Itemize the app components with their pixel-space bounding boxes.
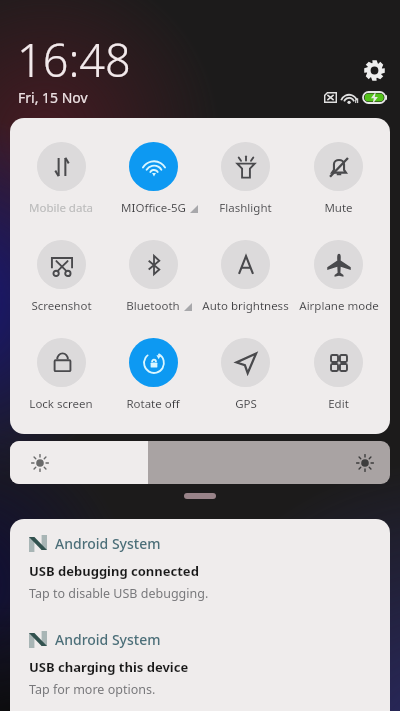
- staticText: MIOffice-5G: [121, 200, 186, 216]
- button[interactable]: Flashlight: [199, 142, 292, 216]
- staticText: Bluetooth: [126, 298, 180, 314]
- staticText: USB debugging connected: [29, 562, 199, 580]
- staticText: Fri, 15 Nov: [18, 88, 88, 107]
- staticText: Mute: [324, 200, 353, 216]
- staticText: Airplane mode: [299, 298, 379, 314]
- button[interactable]: GPS: [199, 338, 292, 412]
- staticText: Flashlight: [219, 200, 272, 216]
- staticText: USB charging this device: [29, 658, 189, 676]
- staticText: 16:48: [17, 29, 131, 90]
- button[interactable]: Airplane mode: [292, 240, 385, 314]
- staticText: Lock screen: [29, 396, 93, 412]
- button[interactable]: Edit: [292, 338, 385, 412]
- button[interactable]: Bluetooth: [107, 240, 199, 314]
- button[interactable]: Mobile data: [15, 142, 107, 216]
- button[interactable]: MIOffice-5G: [107, 142, 199, 216]
- button[interactable]: [10, 441, 390, 484]
- staticText: GPS: [235, 396, 257, 412]
- button[interactable]: Lock screen: [15, 338, 107, 412]
- button[interactable]: Auto brightness: [199, 240, 292, 314]
- staticText: Tap for more options.: [29, 681, 156, 698]
- button[interactable]: Screenshot: [15, 240, 107, 314]
- button[interactable]: Android System: [10, 519, 390, 615]
- staticText: Android System: [55, 534, 161, 553]
- button[interactable]: Rotate off: [107, 338, 199, 412]
- button[interactable]: Settings: [362, 58, 387, 83]
- staticText: Edit: [328, 396, 349, 412]
- staticText: Mobile data: [29, 200, 93, 216]
- staticText: Auto brightness: [202, 298, 289, 314]
- button[interactable]: Android System: [10, 615, 390, 711]
- button[interactable]: Mute: [292, 142, 385, 216]
- staticText: Screenshot: [31, 298, 92, 314]
- staticText: Android System: [55, 630, 161, 649]
- staticText: Tap to disable USB debugging.: [29, 585, 209, 602]
- staticText: Rotate off: [126, 396, 180, 412]
